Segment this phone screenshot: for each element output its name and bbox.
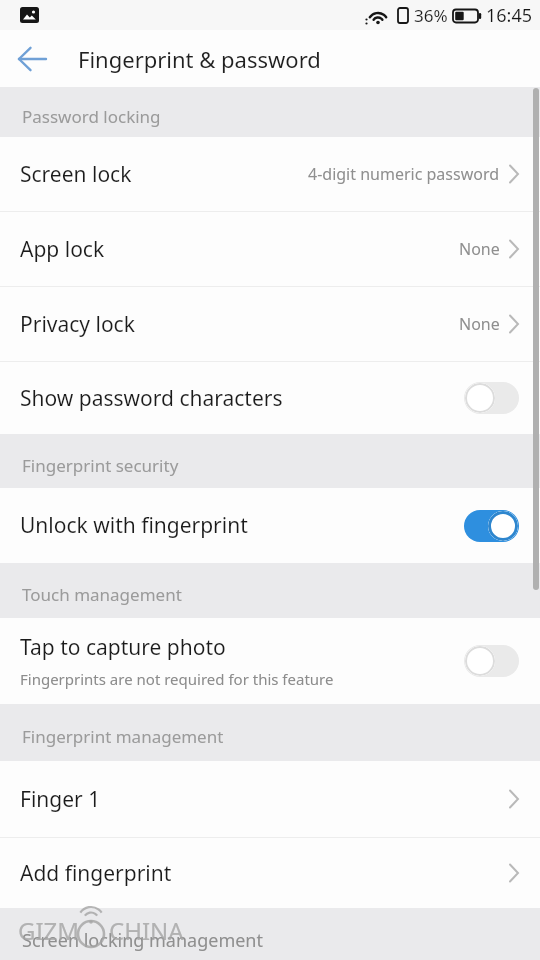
staticText: Finger 1 bbox=[20, 785, 101, 814]
staticText: Fingerprint security bbox=[22, 454, 179, 477]
button[interactable]: Privacy lock bbox=[0, 287, 540, 361]
button[interactable]: App lock bbox=[0, 212, 540, 286]
button[interactable]: Finger 1 bbox=[0, 761, 540, 837]
staticText: CHINA bbox=[109, 914, 184, 947]
staticText: None bbox=[459, 313, 500, 335]
staticText: None bbox=[459, 238, 500, 260]
staticText: Touch management bbox=[22, 583, 182, 606]
staticText: Fingerprint & password bbox=[78, 44, 321, 74]
button[interactable]: Tap to capture photo bbox=[0, 618, 540, 704]
button[interactable]: Unlock with fingerprint bbox=[0, 488, 540, 563]
staticText: Screen locking management bbox=[22, 928, 263, 953]
staticText: 16:45 bbox=[486, 3, 533, 28]
staticText: Password locking bbox=[22, 105, 161, 128]
staticText: 4-digit numeric password bbox=[308, 163, 500, 185]
staticText: Fingerprint management bbox=[22, 725, 224, 748]
staticText: Show password characters bbox=[20, 384, 283, 413]
staticText: Privacy lock bbox=[20, 310, 135, 339]
button[interactable]: Show password characters bbox=[0, 362, 540, 434]
staticText: Unlock with fingerprint bbox=[20, 511, 248, 540]
staticText: Fingerprints are not required for this f… bbox=[20, 669, 334, 689]
staticText: Screen lock bbox=[20, 160, 132, 189]
staticText: 36% bbox=[414, 4, 448, 27]
staticText: App lock bbox=[20, 235, 105, 264]
button[interactable]: Add fingerprint bbox=[0, 838, 540, 908]
button[interactable] bbox=[10, 37, 54, 81]
staticText: GIZM bbox=[18, 914, 80, 947]
staticText: Add fingerprint bbox=[20, 859, 172, 888]
staticText: Tap to capture photo bbox=[20, 633, 226, 662]
button[interactable]: Screen lock bbox=[0, 137, 540, 211]
